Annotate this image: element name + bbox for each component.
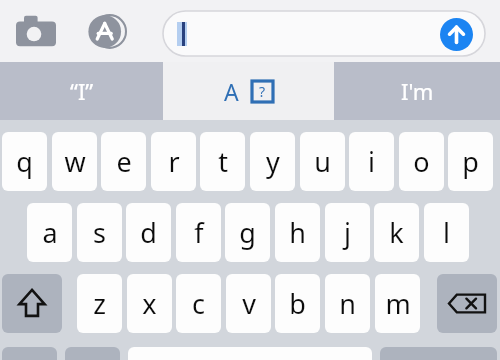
staticText: h [289, 214, 306, 251]
button[interactable]: d [126, 203, 171, 262]
button[interactable]: n [325, 274, 370, 333]
button[interactable]: o [399, 132, 444, 191]
button[interactable]: Backspace [437, 274, 497, 333]
button[interactable]: r [151, 132, 196, 191]
staticText: I'm [401, 76, 434, 106]
button[interactable]: w [52, 132, 97, 191]
button[interactable]: Return [380, 347, 497, 360]
button[interactable]: s [77, 203, 122, 262]
button[interactable]: j [325, 203, 370, 262]
staticText: d [140, 214, 157, 251]
button[interactable]: k [374, 203, 419, 262]
staticText: c [192, 285, 205, 322]
button[interactable]: Camera [16, 14, 56, 48]
staticText: p [462, 143, 479, 180]
button[interactable]: a [27, 203, 72, 262]
button[interactable]: l [424, 203, 469, 262]
button[interactable]: t [200, 132, 245, 191]
staticText: z [93, 285, 106, 322]
button[interactable]: y [250, 132, 295, 191]
button[interactable]: v [226, 274, 271, 333]
staticText: y [266, 143, 280, 180]
button[interactable]: c [176, 274, 221, 333]
button[interactable]: App Store [88, 13, 126, 50]
button[interactable]: g [225, 203, 270, 262]
staticText: e [116, 143, 132, 180]
button[interactable]: A [163, 62, 334, 120]
staticText: x [142, 285, 157, 322]
staticText: j [344, 214, 351, 251]
button[interactable]: i [349, 132, 394, 191]
staticText: s [93, 214, 106, 251]
staticText: n [339, 285, 356, 322]
staticText: f [194, 214, 204, 251]
staticText: l [443, 214, 450, 251]
staticText: o [413, 143, 430, 180]
button[interactable]: e [101, 132, 146, 191]
staticText: u [314, 143, 331, 180]
staticText: w [64, 143, 86, 180]
staticText: m [385, 285, 411, 322]
button[interactable]: p [448, 132, 493, 191]
staticText: b [289, 285, 306, 322]
staticText: i [368, 143, 375, 180]
button[interactable]: x [127, 274, 172, 333]
staticText: a [42, 214, 58, 251]
button[interactable]: Emoji [65, 347, 120, 360]
button[interactable]: f [176, 203, 221, 262]
button[interactable]: b [275, 274, 320, 333]
staticText: k [389, 214, 404, 251]
staticText: t [218, 143, 228, 180]
button[interactable]: Shift [2, 274, 62, 333]
staticText: r [168, 143, 180, 180]
button[interactable]: I'm [334, 62, 500, 120]
button[interactable] [163, 11, 485, 56]
staticText: “I” [70, 76, 94, 106]
button[interactable]: m [375, 274, 420, 333]
button[interactable]: Numbers [2, 347, 57, 360]
button[interactable]: u [300, 132, 345, 191]
staticText: v [242, 285, 256, 322]
staticText: q [16, 143, 33, 180]
button[interactable]: q [2, 132, 47, 191]
staticText: A [224, 76, 239, 107]
button[interactable]: “I” [0, 62, 163, 120]
button[interactable]: Send [440, 18, 473, 51]
staticText: g [239, 214, 256, 251]
button[interactable]: h [275, 203, 320, 262]
staticText: ? [259, 82, 266, 101]
button[interactable]: z [77, 274, 122, 333]
